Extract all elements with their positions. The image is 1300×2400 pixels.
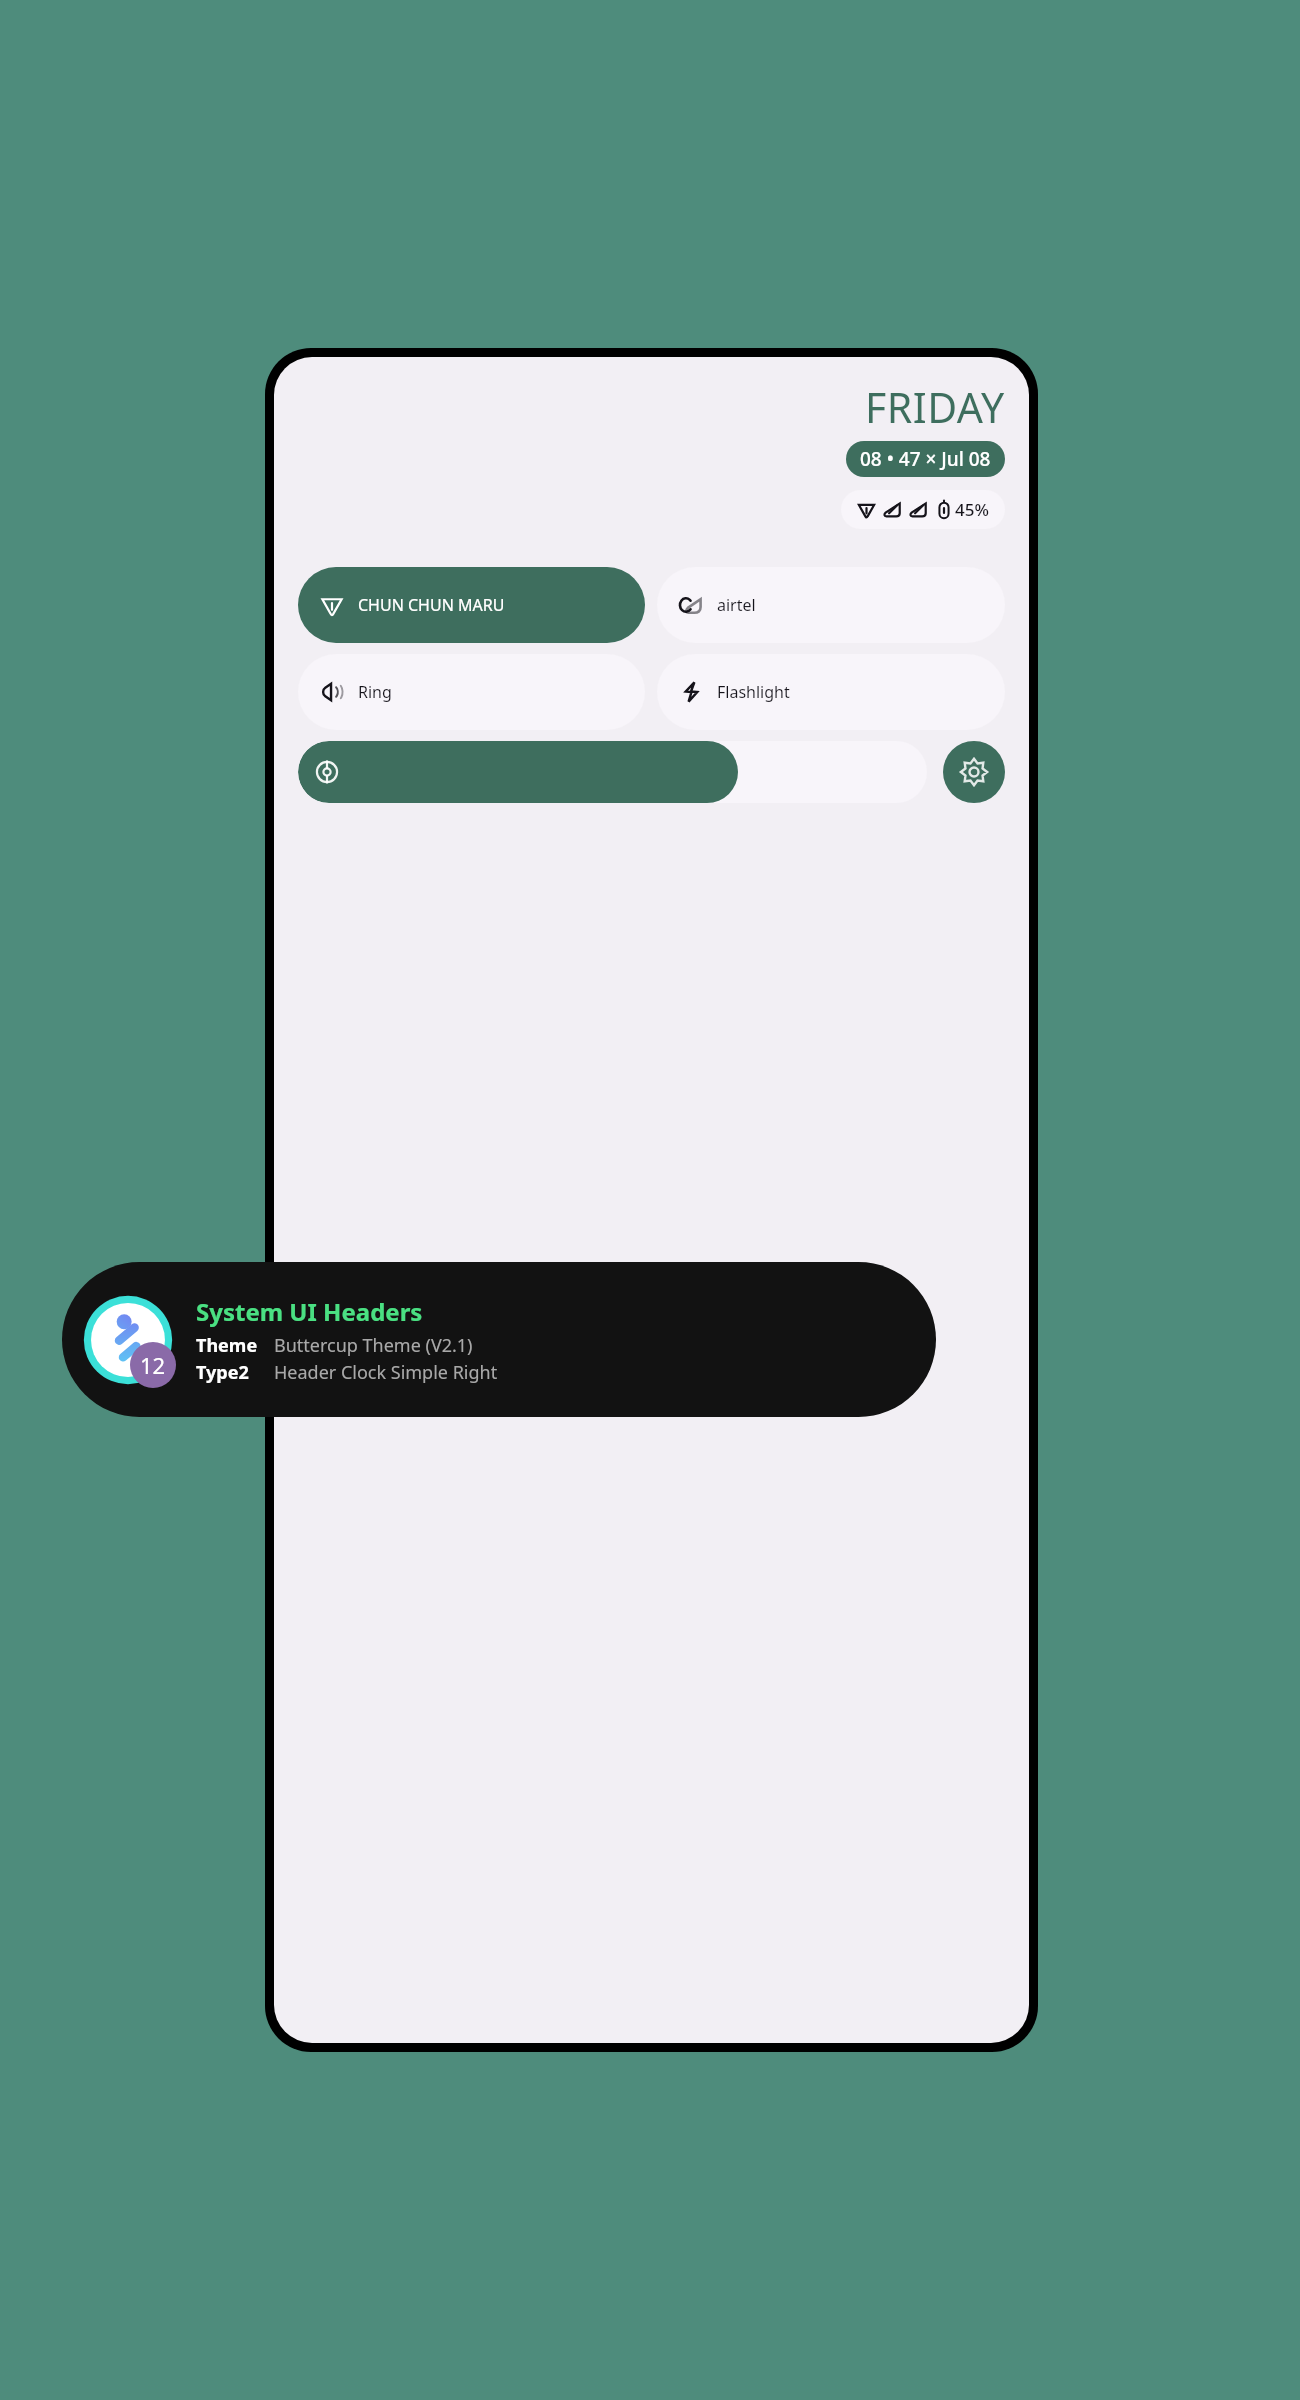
staticText: Flashlight [717, 681, 790, 703]
staticText: Type2 [196, 1360, 274, 1385]
button[interactable]: 08 • 47 × Jul 08 [846, 441, 1005, 477]
button[interactable]: Ring [298, 654, 645, 730]
staticText: 08 • 47 × Jul 08 [860, 446, 991, 472]
staticText: Header Clock Simple Right [274, 1360, 498, 1385]
staticText: CHUN CHUN MARU [358, 594, 505, 616]
staticText: FRIDAY [865, 379, 1005, 435]
button[interactable]: Brightness [298, 741, 927, 803]
button[interactable]: 12 [62, 1262, 936, 1417]
button[interactable]: Settings [943, 741, 1005, 803]
staticText: 12 [140, 1350, 166, 1380]
button[interactable]: CHUN CHUN MARU [298, 567, 645, 643]
staticText: Theme [196, 1333, 274, 1358]
staticText: Buttercup Theme (V2.1) [274, 1333, 473, 1358]
staticText: airtel [717, 594, 756, 616]
button[interactable]: airtel [657, 567, 1005, 643]
staticText: Ring [358, 681, 392, 703]
staticText: System UI Headers [196, 1295, 423, 1328]
staticText: 45% [955, 498, 989, 521]
button[interactable]: Flashlight [657, 654, 1005, 730]
button[interactable]: Status icons [841, 490, 1005, 529]
